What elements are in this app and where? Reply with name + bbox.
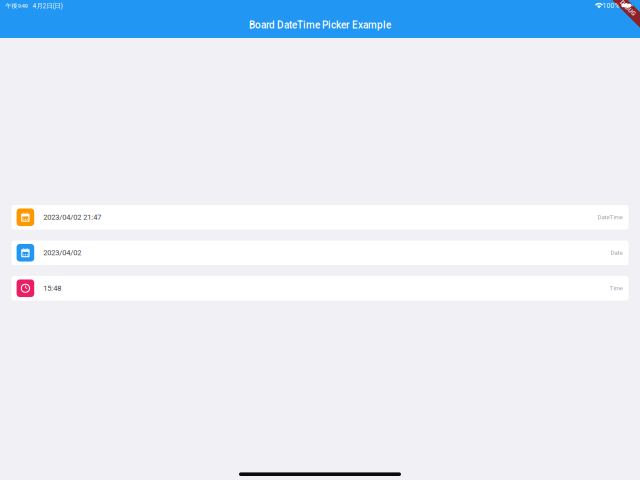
staticText: DateTime [598,214,623,221]
staticText: 100% [602,2,619,10]
staticText: 2023/04/02 [43,248,81,257]
staticText: 2023/04/02 21:47 [43,213,101,222]
button[interactable]: 15:48 [11,276,629,300]
staticText: Date [611,249,623,256]
staticText: 15:48 [43,284,61,293]
staticText: 午後9:49 [5,2,27,10]
staticText: Time [610,285,623,292]
button[interactable]: 2023/04/02 [11,240,629,265]
staticText: 4月2日(日) [32,2,62,10]
button[interactable]: 2023/04/02 21:47 [11,205,629,229]
staticText: DEBUG [618,4,637,12]
staticText: Board DateTime Picker Example [249,19,391,31]
